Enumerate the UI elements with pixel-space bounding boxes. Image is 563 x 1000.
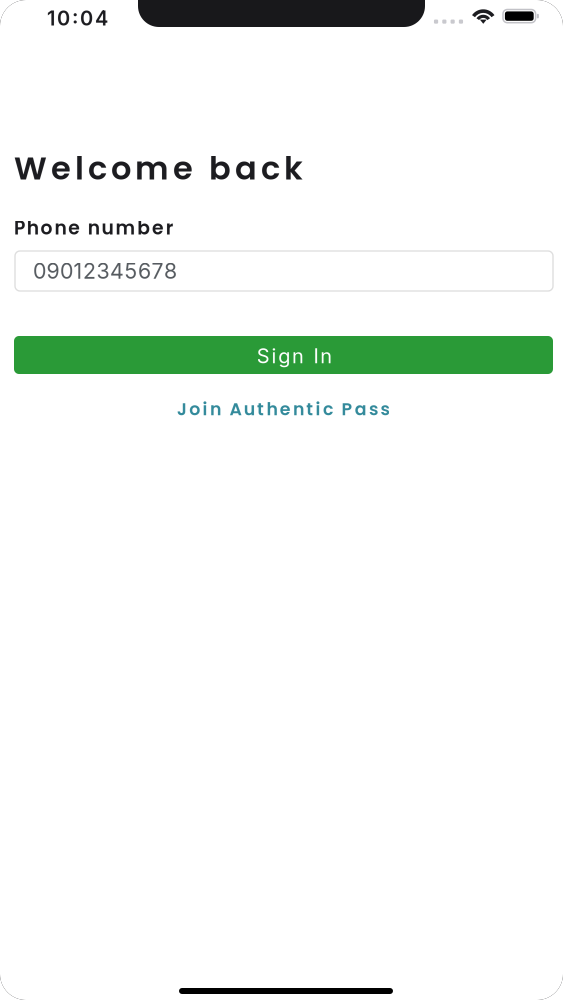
button[interactable]: Sign In	[14, 336, 553, 374]
staticText: 10:04	[47, 6, 108, 30]
staticText: Join Authentic Pass	[177, 397, 389, 421]
button[interactable]: Join Authentic Pass	[177, 397, 389, 421]
staticText: 09012345678	[33, 258, 177, 284]
staticText: Phone number	[14, 215, 174, 241]
staticText: Welcome back	[14, 146, 303, 191]
staticText: Sign In	[257, 344, 332, 368]
